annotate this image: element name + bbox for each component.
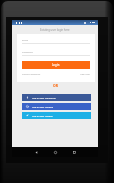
staticText: Log in xyxy=(52,63,60,67)
button[interactable]: Log in with Twitter xyxy=(22,112,91,119)
staticText: Log in with Facebook xyxy=(32,96,56,99)
button[interactable]: Forgot Password? xyxy=(22,73,41,76)
button[interactable]: Back xyxy=(33,149,40,156)
button[interactable]: Log in with Google xyxy=(22,103,91,110)
staticText: OR xyxy=(53,83,58,88)
button[interactable]: Log in with Facebook xyxy=(22,94,91,101)
staticText: Log in with Google xyxy=(32,105,54,108)
button[interactable]: New User xyxy=(80,73,90,76)
button[interactable]: Log in xyxy=(22,61,90,69)
button[interactable]: Home xyxy=(52,149,59,156)
staticText: Existing user login here xyxy=(40,28,70,32)
staticText: Password xyxy=(22,50,33,53)
staticText: Log in with Twitter xyxy=(32,114,53,117)
staticText: Email xyxy=(22,38,29,41)
button[interactable]: Recents xyxy=(71,149,78,156)
